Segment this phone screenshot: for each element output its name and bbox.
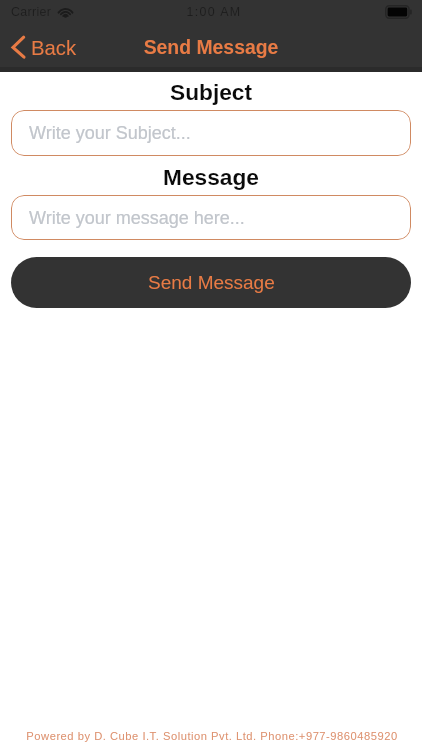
- button[interactable]: Write your message here...: [11, 195, 411, 240]
- staticText: 1:00 AM: [3, 5, 422, 19]
- staticText: Carrier: [11, 5, 52, 19]
- staticText: Powered by D. Cube I.T. Solution Pvt. Lt…: [1, 730, 422, 743]
- staticText: Message: [0, 164, 422, 189]
- staticText: Back: [31, 37, 77, 60]
- staticText: Write your Subject...: [29, 123, 191, 143]
- button[interactable]: Back: [4, 30, 82, 70]
- button[interactable]: Write your Subject...: [11, 110, 411, 156]
- staticText: Subject: [0, 79, 422, 104]
- button[interactable]: Send Message: [11, 257, 411, 308]
- staticText: Send Message: [0, 36, 422, 58]
- staticText: Send Message: [148, 272, 275, 293]
- staticText: Write your message here...: [29, 208, 245, 228]
